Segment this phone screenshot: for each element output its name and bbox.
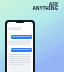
staticText: ANYTHING <box>32 5 58 11</box>
button[interactable] <box>11 48 32 52</box>
staticText: ASK <box>48 1 58 7</box>
button[interactable] <box>8 27 22 31</box>
button[interactable] <box>11 35 32 39</box>
button[interactable] <box>8 40 31 46</box>
button[interactable] <box>8 53 31 72</box>
